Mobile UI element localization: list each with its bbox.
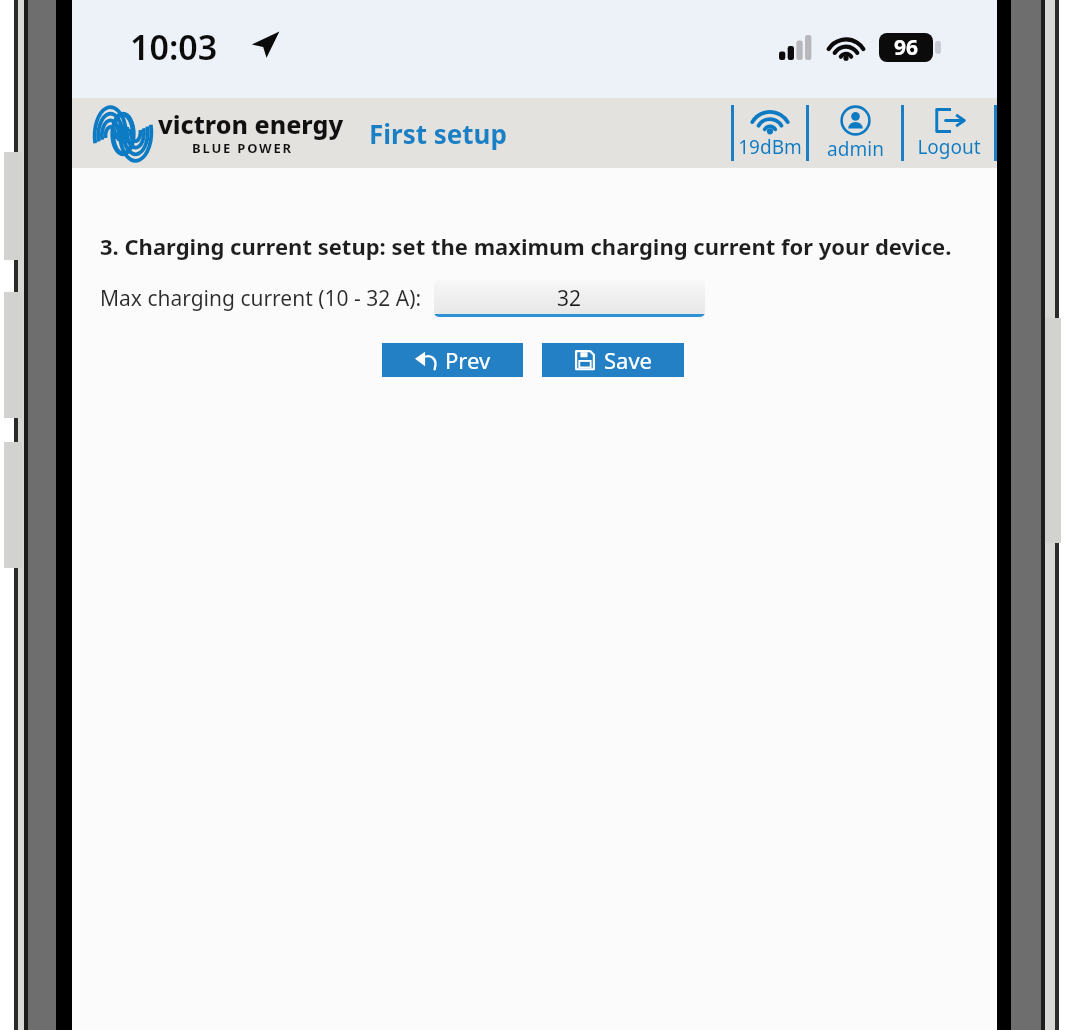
staticText: 19dBm: [738, 134, 802, 160]
staticText: Logout: [917, 134, 981, 160]
button[interactable]: User admin: [809, 98, 901, 168]
staticText: BLUE POWER: [192, 139, 293, 157]
button[interactable]: Save: [542, 343, 684, 377]
staticText: victron energy: [158, 107, 344, 141]
staticText: 3. Charging current setup: set the maxim…: [100, 231, 952, 261]
staticText: Max charging current (10 - 32 A):: [100, 284, 422, 313]
staticText: 32: [557, 284, 582, 313]
staticText: 96: [894, 33, 919, 62]
staticText: First setup: [369, 116, 507, 151]
staticText: 10:03: [130, 24, 218, 70]
staticText: admin: [827, 136, 884, 162]
button[interactable]: Logout: [904, 98, 994, 168]
staticText: Save: [604, 345, 653, 375]
staticText: Prev: [445, 345, 491, 375]
button[interactable]: Prev: [382, 343, 523, 377]
button[interactable]: 32: [434, 280, 705, 317]
button[interactable]: Signal strength 19 dBm: [734, 98, 806, 168]
